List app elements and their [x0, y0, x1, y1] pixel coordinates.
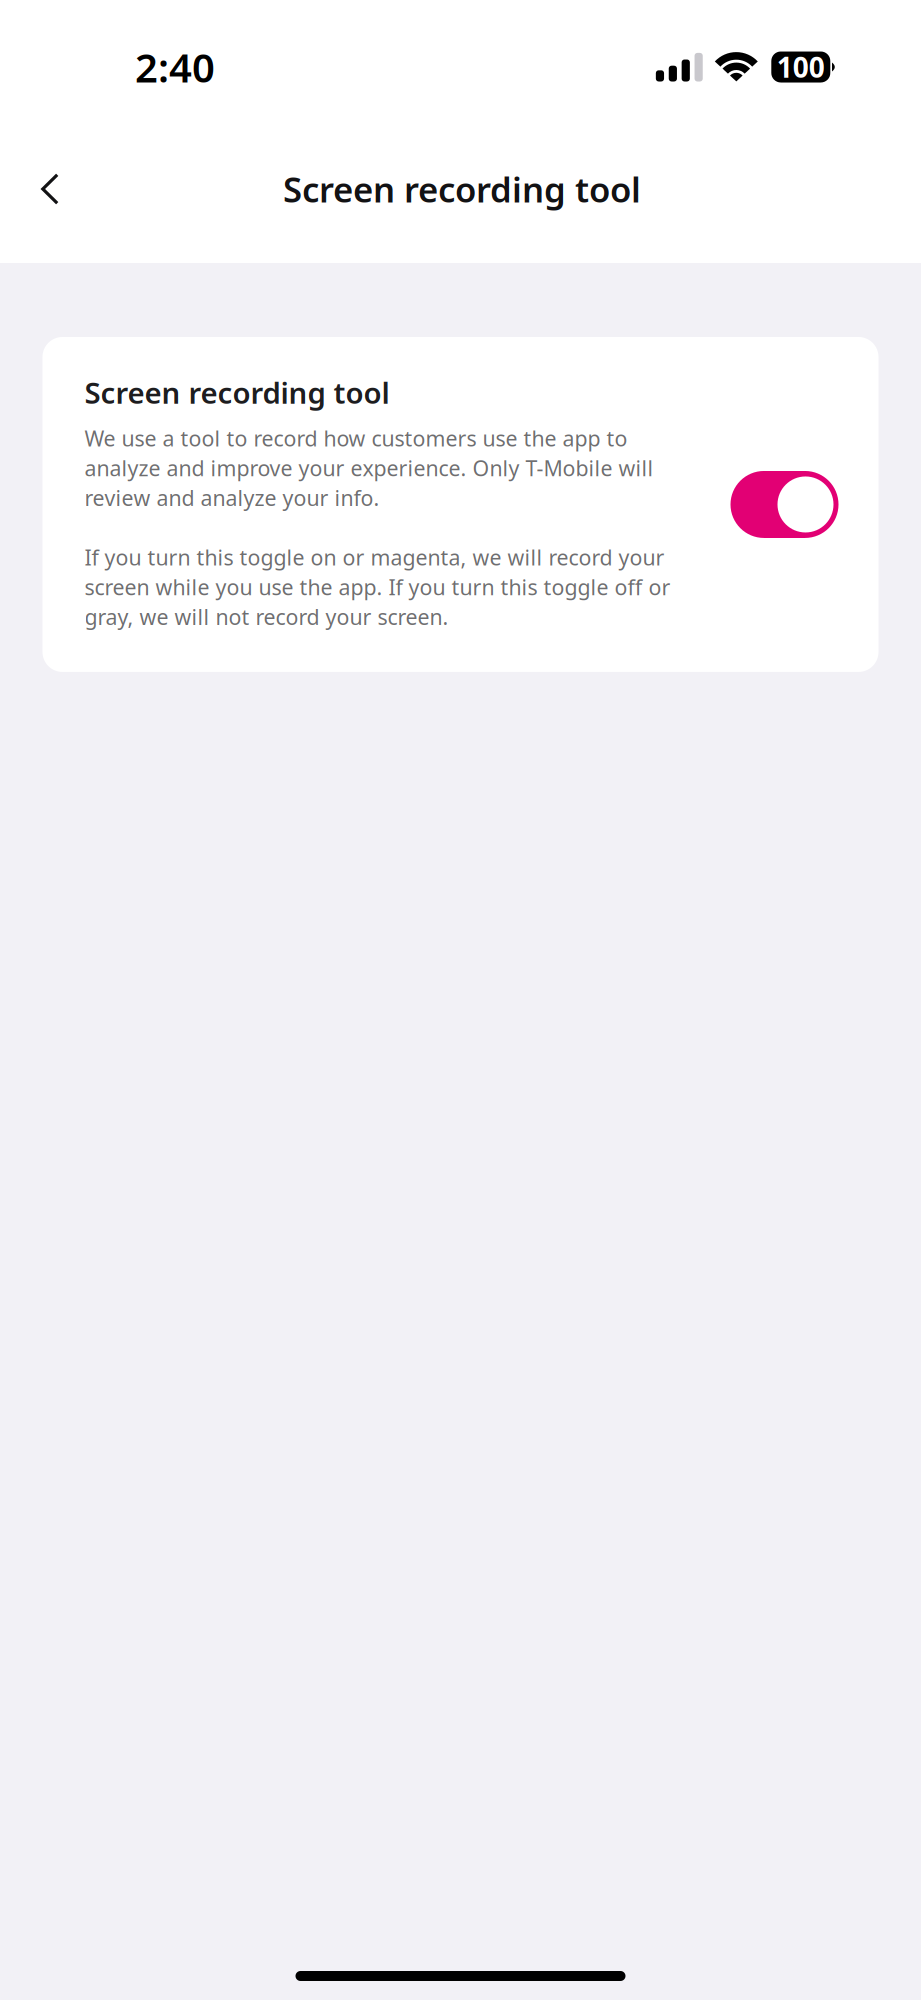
staticText: If you turn this toggle on or magenta, w…: [84, 543, 670, 631]
staticText: 100: [777, 48, 825, 86]
staticText: Screen recording tool: [84, 373, 389, 412]
staticText: 2:40: [135, 40, 215, 93]
staticText: Screen recording tool: [283, 166, 641, 212]
button[interactable]: Back: [17, 153, 83, 225]
staticText: We use a tool to record how customers us…: [84, 424, 653, 512]
button[interactable]: Screen recording tool, on: [730, 471, 838, 538]
